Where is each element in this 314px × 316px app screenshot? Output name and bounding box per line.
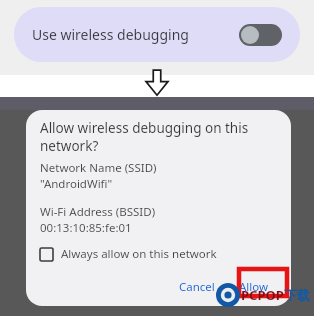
staticText: "AndroidWifi" (40, 176, 113, 192)
staticText: Use wireless debugging (32, 25, 239, 44)
staticText: Allow (239, 279, 269, 295)
staticText: Network Name (SSID) (40, 160, 157, 176)
staticText: Cancel (179, 279, 215, 295)
button[interactable]: Use wireless debugging toggle (239, 24, 282, 46)
staticText: Always allow on this network (61, 246, 217, 262)
button[interactable]: Always allow on this network (40, 243, 277, 265)
staticText: PCPOP (241, 286, 284, 304)
button[interactable]: Cancel (173, 276, 221, 298)
button[interactable]: Use wireless debugging (14, 7, 300, 62)
button[interactable]: Allow (231, 276, 277, 298)
staticText: 00:13:10:85:fe:01 (40, 220, 132, 236)
staticText: Wi-Fi Address (BSSID) (40, 204, 156, 220)
staticText: 下载 (284, 287, 310, 303)
staticText: Allow wireless debugging on this network… (40, 119, 249, 155)
